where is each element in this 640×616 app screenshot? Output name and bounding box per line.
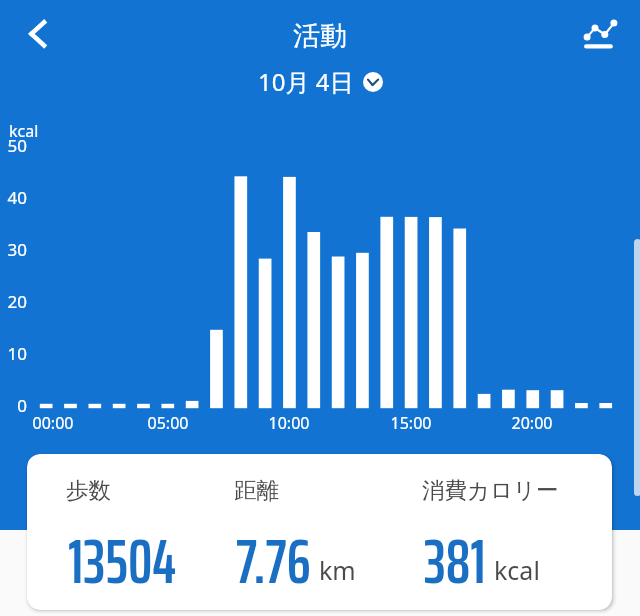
button[interactable]: Trends <box>580 10 628 58</box>
button[interactable]: 活動 <box>293 19 347 53</box>
staticText: 20:00 <box>482 412 582 434</box>
staticText: 消費カロリー <box>422 476 559 504</box>
staticText: 40 <box>0 186 27 209</box>
staticText: 13504 <box>68 514 177 610</box>
button[interactable]: Back <box>14 10 62 58</box>
button[interactable]: 歩数 <box>27 454 612 610</box>
staticText: 05:00 <box>118 412 218 434</box>
staticText: 10月 4日 <box>258 65 354 98</box>
staticText: 00:00 <box>3 412 103 434</box>
staticText: 381 <box>424 514 486 610</box>
staticText: 20 <box>0 290 27 313</box>
staticText: 距離 <box>234 476 279 504</box>
staticText: 7.76 <box>236 514 311 610</box>
staticText: 10 <box>0 342 27 365</box>
staticText: 0 <box>0 394 27 417</box>
staticText: kcal <box>9 120 39 142</box>
staticText: 15:00 <box>361 412 461 434</box>
staticText: 歩数 <box>66 476 111 504</box>
staticText: 30 <box>0 238 27 261</box>
button[interactable]: 10月 4日 <box>258 65 383 98</box>
staticText: 10:00 <box>239 412 339 434</box>
staticText: kcal <box>494 553 540 587</box>
staticText: 活動 <box>293 19 347 53</box>
staticText: 50 <box>0 134 27 157</box>
staticText: km <box>319 553 356 587</box>
